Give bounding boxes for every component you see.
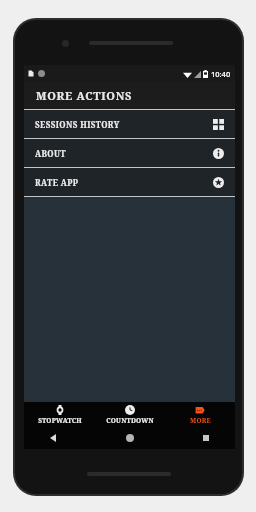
staticText: SESSIONS HISTORY [35,119,120,130]
staticText: 10:40 [211,69,231,79]
button[interactable]: Stopwatch [24,402,95,427]
button[interactable]: Back [44,429,62,447]
other: Countdown [125,405,135,415]
button[interactable]: Sessions history [24,110,235,138]
staticText: RATE APP [35,177,79,188]
button[interactable]: About [24,139,235,167]
button[interactable]: Recents [197,429,215,447]
button[interactable]: Home [121,429,139,447]
button[interactable]: Countdown [95,402,165,427]
staticText: MORE ACTIONS [36,88,133,103]
other: Stopwatch [55,405,65,415]
button[interactable]: More [165,402,235,427]
staticText: COUNTDOWN [106,416,154,425]
other: More [195,405,205,415]
staticText: ABOUT [35,148,66,159]
button[interactable]: Rate App [24,168,235,196]
staticText: MORE [190,416,211,425]
staticText: STOPWATCH [38,416,82,425]
